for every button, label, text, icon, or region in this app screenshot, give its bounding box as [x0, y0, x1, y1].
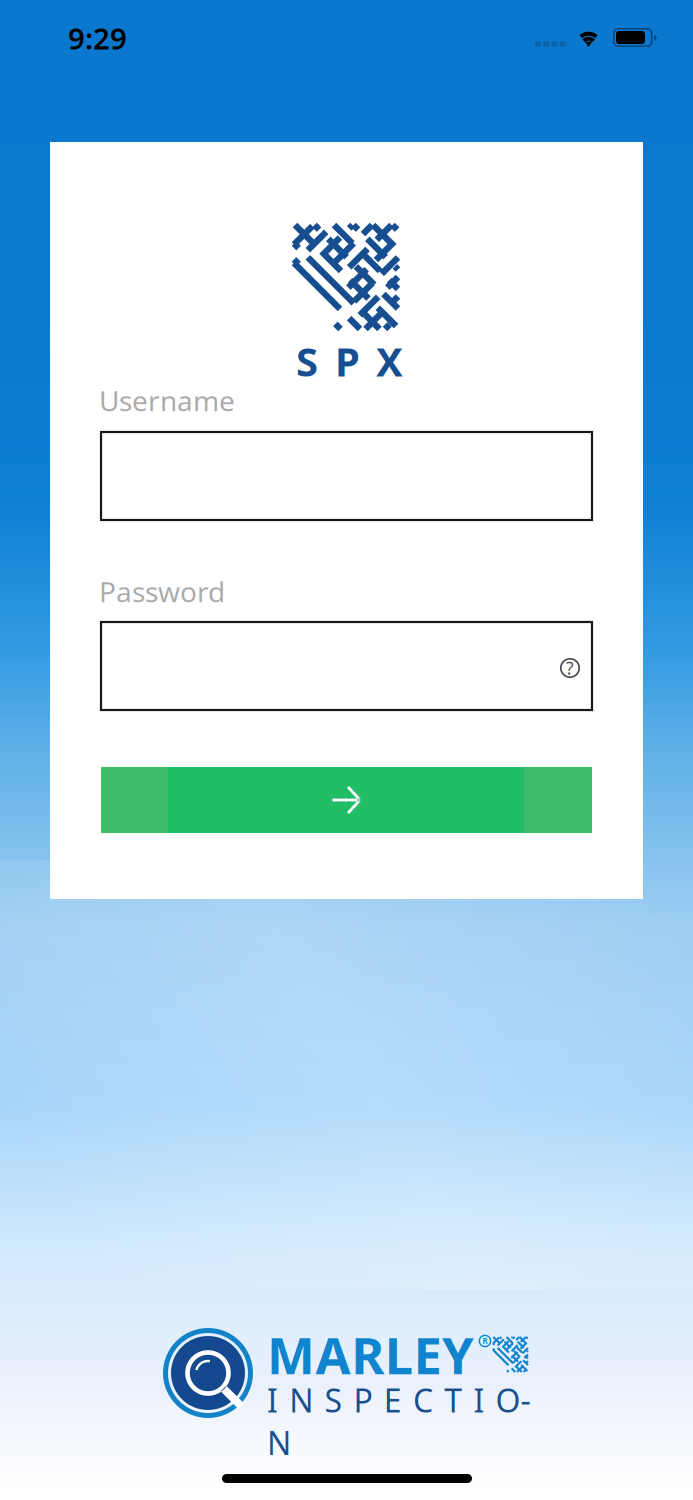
- button[interactable]: Password help: [548, 646, 592, 690]
- staticText: 9:29: [68, 18, 127, 57]
- staticText: Password: [99, 573, 225, 610]
- button[interactable]: Sign in: [101, 767, 592, 833]
- staticText: INSPECTION: [267, 1379, 556, 1421]
- staticText: R: [482, 1336, 487, 1346]
- staticText: ?: [566, 656, 574, 679]
- staticText: SPX: [296, 334, 403, 387]
- staticText: MARLEY: [267, 1321, 474, 1388]
- staticText: Username: [99, 382, 235, 419]
